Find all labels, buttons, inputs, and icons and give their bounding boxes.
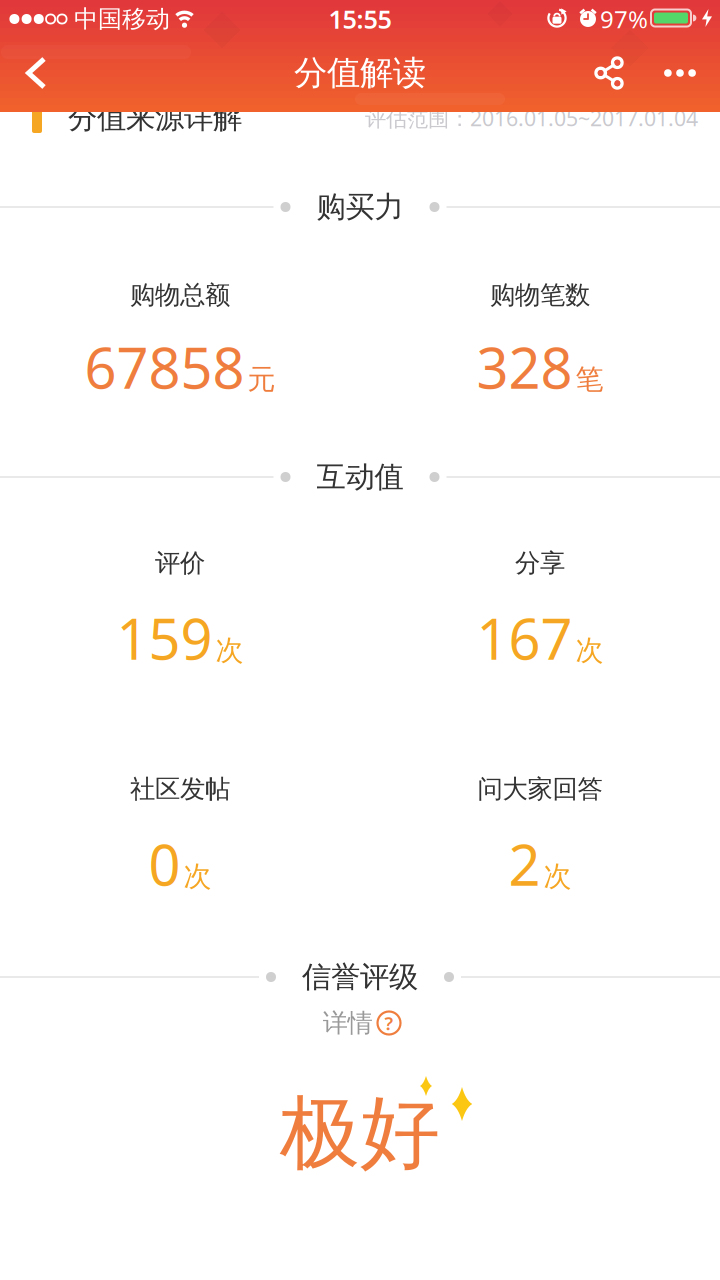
staticText: 购买力 <box>316 189 403 225</box>
staticText: 159 <box>116 601 212 675</box>
staticText: 67858 <box>84 330 244 404</box>
staticText: 次 <box>543 859 571 894</box>
staticText: 328 <box>476 330 572 404</box>
staticText: 分值来源详解 <box>68 100 242 136</box>
staticText: 次 <box>215 633 243 668</box>
staticText: 15:55 <box>328 2 391 36</box>
staticText: 2 <box>508 827 540 901</box>
staticText: 问大家回答 <box>477 773 602 804</box>
staticText: 167 <box>476 601 572 675</box>
staticText: 分享 <box>515 547 565 578</box>
staticText: 97% <box>600 3 648 35</box>
staticText: 购物笔数 <box>490 279 590 310</box>
staticText: 信誉评级 <box>302 959 418 995</box>
staticText: 极好 <box>280 1084 440 1182</box>
button[interactable]: 详情 <box>322 1007 401 1038</box>
staticText: ? <box>384 1011 393 1035</box>
staticText: 0 <box>148 827 180 901</box>
staticText: 互动值 <box>316 459 403 495</box>
staticText: 评价 <box>155 547 205 578</box>
staticText: 分值解读 <box>294 52 426 93</box>
staticText: 社区发帖 <box>130 773 230 804</box>
staticText: 详情 <box>322 1007 372 1038</box>
button[interactable]: Share <box>583 47 635 99</box>
button[interactable]: Back <box>6 43 66 103</box>
staticText: 元 <box>247 362 275 397</box>
staticText: 中国移动 <box>74 4 170 34</box>
button[interactable]: More <box>654 47 706 99</box>
staticText: 笔 <box>575 362 603 397</box>
staticText: 评估范围：2016.01.05~2017.01.04 <box>365 104 698 132</box>
staticText: 购物总额 <box>130 279 230 310</box>
staticText: 次 <box>575 633 603 668</box>
staticText: 次 <box>183 859 211 894</box>
